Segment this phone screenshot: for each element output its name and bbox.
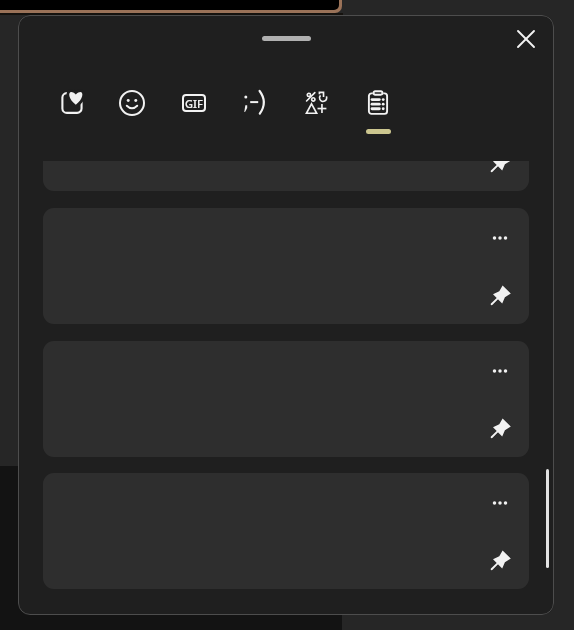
button[interactable]: More options bbox=[478, 349, 522, 393]
button[interactable]: Pin bbox=[479, 161, 523, 184]
button[interactable]: More options bbox=[478, 216, 522, 260]
button[interactable]: Clipboard bbox=[350, 71, 406, 135]
button[interactable]: More options bbox=[43, 208, 529, 324]
button[interactable]: More options bbox=[43, 473, 529, 589]
button[interactable]: Symbols bbox=[288, 71, 344, 135]
button[interactable]: GIF bbox=[166, 71, 222, 135]
staticText: GIF bbox=[185, 96, 203, 111]
button[interactable]: Pin bbox=[479, 538, 523, 582]
button[interactable]: Stickers bbox=[44, 71, 100, 135]
button[interactable]: More options bbox=[478, 481, 522, 525]
button[interactable]: Emoticons bbox=[227, 71, 283, 135]
button[interactable]: Pin bbox=[43, 161, 529, 191]
button[interactable]: Emoji bbox=[104, 71, 160, 135]
button[interactable]: More options bbox=[43, 341, 529, 457]
button[interactable]: Pin bbox=[479, 273, 523, 317]
button[interactable]: Close bbox=[502, 15, 550, 63]
button[interactable]: Pin bbox=[479, 406, 523, 450]
